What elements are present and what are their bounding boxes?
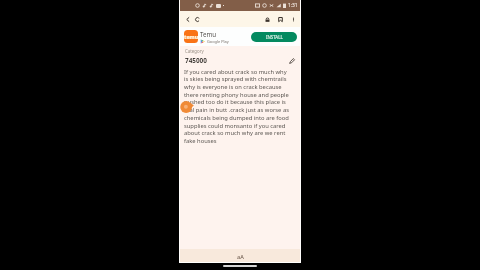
button[interactable]: Edit <box>288 57 296 65</box>
button[interactable]: Text size <box>234 250 246 262</box>
button[interactable]: Bookmarks <box>276 15 285 24</box>
staticText: fake houses <box>184 137 217 145</box>
staticText: real pain in butt .crack just as worse a… <box>184 106 289 114</box>
staticText: temu <box>184 33 198 40</box>
staticText: INSTALL <box>266 34 283 40</box>
button[interactable]: Site security <box>263 15 272 24</box>
staticText: chemicals being dumped into are food <box>184 114 289 122</box>
staticText: is skies being sprayed with chemtrails <box>184 75 287 83</box>
staticText: If you cared about crack so much why <box>184 68 287 76</box>
staticText: about crack so much why are we rent <box>184 129 286 137</box>
staticText: supplies could monsanto if you cared <box>184 122 286 130</box>
button[interactable]: Back <box>183 15 192 24</box>
button[interactable]: INSTALL <box>251 32 297 42</box>
staticText: Temu <box>200 30 217 38</box>
staticText: there renting phony house and people <box>184 91 289 99</box>
staticText: 1:31 <box>288 2 298 9</box>
button[interactable]: Assistant <box>180 100 194 114</box>
staticText: Category <box>185 48 204 54</box>
staticText: pushed too do it because this place is <box>184 98 286 106</box>
staticText: Google Play <box>207 39 229 44</box>
button[interactable]: More options <box>289 15 298 24</box>
staticText: why is everyone is on crack because <box>184 83 282 91</box>
staticText: 745000 <box>185 56 207 65</box>
button[interactable]: Refresh <box>193 15 202 24</box>
staticText: aA <box>237 253 244 260</box>
